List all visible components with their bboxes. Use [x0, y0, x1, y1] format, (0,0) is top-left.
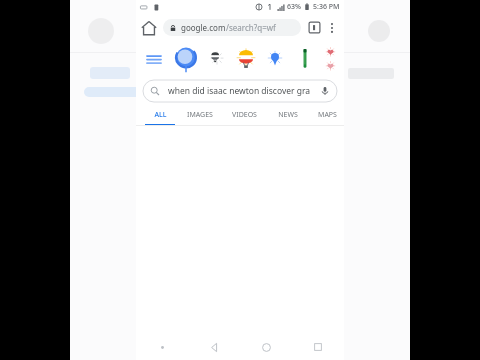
button[interactable]: NEWS [266, 105, 310, 126]
staticText: IMAGES [187, 110, 213, 120]
button[interactable]: Balloon doodle [233, 46, 259, 72]
button[interactable]: Doodle [208, 50, 226, 68]
button[interactable]: VIDEOS [222, 105, 266, 126]
staticText: when did isaac newton discover gra [168, 85, 311, 97]
staticText: google.com [181, 22, 226, 33]
button[interactable]: Hearts [324, 46, 337, 73]
staticText: VIDEOS [232, 110, 257, 120]
staticText: MAPS [318, 110, 337, 120]
button[interactable]: google.com [163, 19, 301, 36]
button[interactable]: MAPS [310, 105, 344, 126]
button[interactable]: ALL [142, 105, 178, 126]
staticText: NEWS [278, 110, 298, 120]
button[interactable]: Keyboard [136, 334, 188, 360]
button[interactable]: Home [240, 334, 292, 360]
button[interactable]: Menu [143, 48, 165, 70]
staticText: /search?q=wf [226, 22, 276, 33]
button[interactable]: Thermometer [292, 46, 318, 72]
button[interactable]: Home [141, 20, 157, 36]
button[interactable]: Tabs [307, 20, 322, 35]
staticText: 63% [287, 2, 301, 12]
button[interactable]: Recent apps [292, 334, 344, 360]
button[interactable]: IMAGES [178, 105, 222, 126]
staticText: ALL [154, 110, 167, 120]
staticText: 5:36 PM [313, 2, 340, 12]
button[interactable]: Back [188, 334, 240, 360]
button[interactable]: Pin doodle [265, 49, 285, 69]
button[interactable]: More options [325, 21, 339, 35]
button[interactable]: Google [171, 44, 201, 74]
button[interactable]: when did isaac newton discover gra [143, 80, 337, 102]
